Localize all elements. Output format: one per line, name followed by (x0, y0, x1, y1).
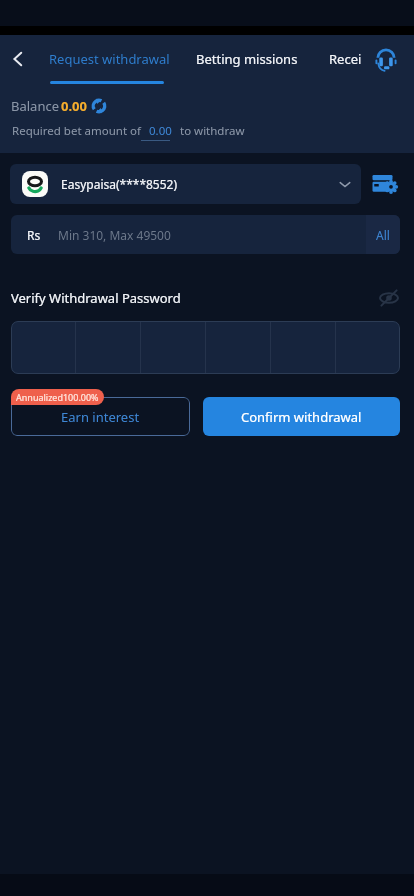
staticText: Verify Withdrawal Password (11, 289, 181, 307)
button[interactable] (11, 321, 400, 374)
button[interactable]: Receive record (329, 35, 362, 82)
staticText: Receive record (329, 50, 362, 68)
button[interactable]: Earn interest (11, 397, 190, 436)
staticText: 0.00 (61, 97, 87, 115)
staticText: Balance (11, 97, 59, 115)
staticText: Annualized100.00% (16, 391, 99, 403)
button[interactable]: Manage payment cards (371, 170, 397, 196)
button[interactable]: Betting missions (192, 35, 302, 82)
button[interactable]: Easypaisa(****8552) (10, 164, 361, 204)
button[interactable]: Request withdrawal (46, 35, 172, 82)
button[interactable]: Customer service (369, 43, 403, 77)
button[interactable]: Toggle password visibility (378, 288, 400, 308)
staticText: Required bet amount of (12, 123, 141, 139)
staticText: to withdraw (180, 123, 245, 139)
staticText: Betting missions (196, 50, 298, 68)
staticText: Request withdrawal (49, 50, 170, 68)
button[interactable]: Back (0, 41, 36, 77)
staticText: Easypaisa(****8552) (61, 176, 178, 192)
staticText: Rs (27, 227, 41, 243)
button[interactable]: Rs (11, 215, 400, 254)
button[interactable]: Refresh balance (91, 98, 107, 114)
staticText: Min 310, Max 49500 (58, 227, 171, 243)
staticText: 0.00 (149, 123, 172, 139)
button[interactable]: Confirm withdrawal (203, 397, 400, 436)
button[interactable]: All (366, 215, 400, 254)
staticText: Earn interest (61, 408, 140, 426)
staticText: Confirm withdrawal (241, 408, 362, 426)
staticText: All (376, 227, 390, 243)
